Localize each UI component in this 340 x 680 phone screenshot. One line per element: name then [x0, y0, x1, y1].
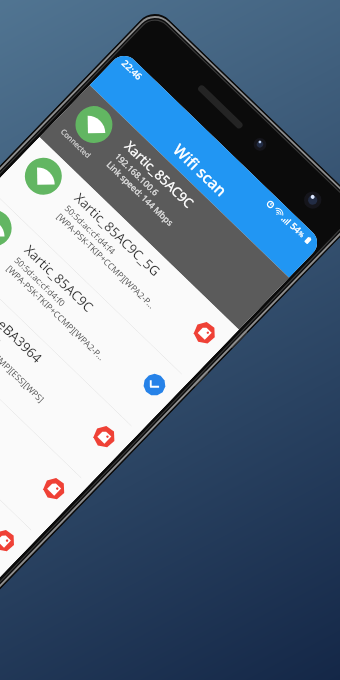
staticText: Xartic_85AC9C [121, 137, 198, 212]
staticText: [WPA2-PSK-CCMP][ESS][WPS] [0, 314, 47, 405]
staticText: 5a:2a:a7:d0 [0, 306, 4, 347]
staticText: 22:46 [119, 57, 145, 83]
staticText: [WPA-PSK-TKIP+CCMP][WPA2-P... [54, 211, 157, 311]
staticText: Connected [58, 126, 93, 160]
staticText: % [297, 229, 307, 239]
staticText: [WPA-PSK-TKIP+CCMP][WPA2-P... [4, 263, 107, 363]
staticText: Wifi scan [169, 139, 232, 201]
button[interactable]: Secured [89, 421, 120, 452]
staticText: 192.168.100.6 [112, 150, 161, 198]
staticText: Link speed: 144 Mbps [104, 159, 176, 228]
button[interactable]: Xartic_85AC9C [0, 189, 189, 434]
button[interactable]: Guest_WiFi [0, 345, 38, 590]
button[interactable]: Connected [39, 85, 289, 330]
button[interactable]: Xartic_85AC9C_5G [0, 137, 239, 382]
staticText: PhoneBA3964 [0, 292, 46, 366]
staticText: 50:5d:ac:cf:d4:f0 [12, 254, 68, 309]
button[interactable]: Saved [139, 369, 170, 400]
button[interactable]: PhoneBA3964 [0, 241, 139, 486]
button[interactable]: Secured [0, 525, 19, 556]
button[interactable]: Xartic2_5G [0, 293, 88, 538]
staticText: Xartic_85AC9C [21, 240, 98, 316]
staticText: 50:5d:ac:cf:d4:f4 [62, 202, 118, 257]
staticText: Xartic_85AC9C_5G [71, 189, 165, 280]
button[interactable]: Secured [189, 317, 220, 348]
button[interactable]: Secured [39, 473, 70, 504]
staticText: 54 [287, 220, 304, 236]
